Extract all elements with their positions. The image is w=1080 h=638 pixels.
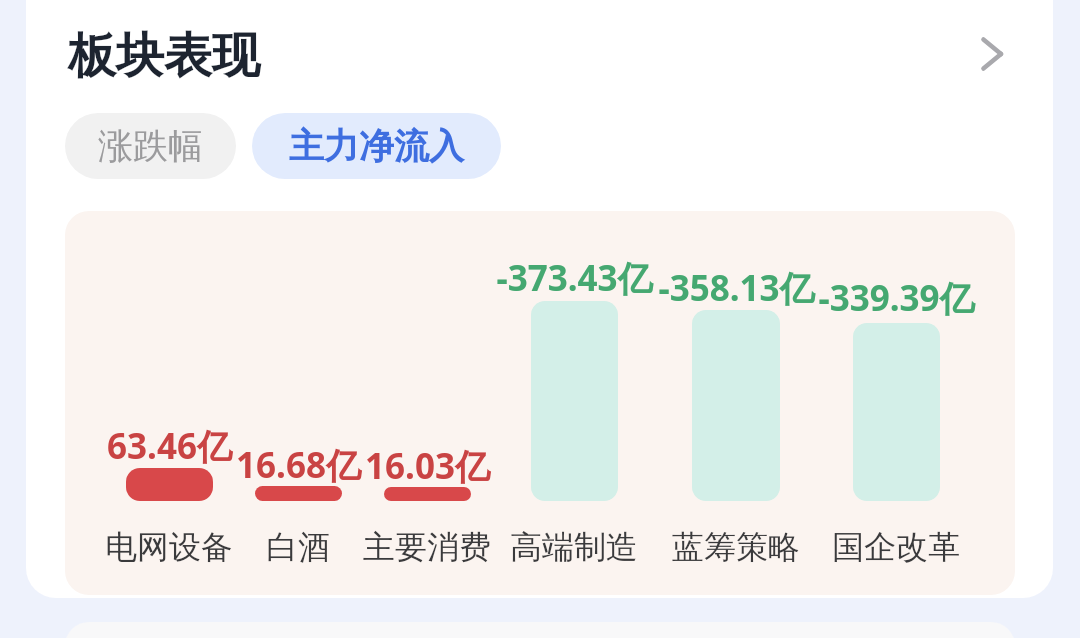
staticText: 63.46亿 [107,422,232,470]
staticText: 蓝筹策略 [672,527,800,567]
button[interactable]: 板块表现 [40,6,1040,98]
button[interactable]: 更多 [948,8,1040,100]
staticText: -358.13亿 [658,264,815,312]
button[interactable]: 涨跌幅 [65,113,236,179]
staticText: 白酒 [266,527,330,567]
staticText: 16.03亿 [365,442,490,490]
staticText: -373.43亿 [496,254,653,302]
button[interactable]: 主力净流入 [252,113,501,179]
staticText: 高端制造 [510,527,638,567]
staticText: -339.39亿 [818,274,975,322]
staticText: 主力净流入 [289,124,464,168]
button[interactable] [65,211,1015,595]
staticText: 电网设备 [105,527,233,567]
staticText: 国企改革 [832,527,960,567]
staticText: 主要消费 [363,527,491,567]
staticText: 16.68亿 [236,441,361,489]
staticText: 板块表现 [68,26,260,86]
staticText: 涨跌幅 [98,124,203,168]
